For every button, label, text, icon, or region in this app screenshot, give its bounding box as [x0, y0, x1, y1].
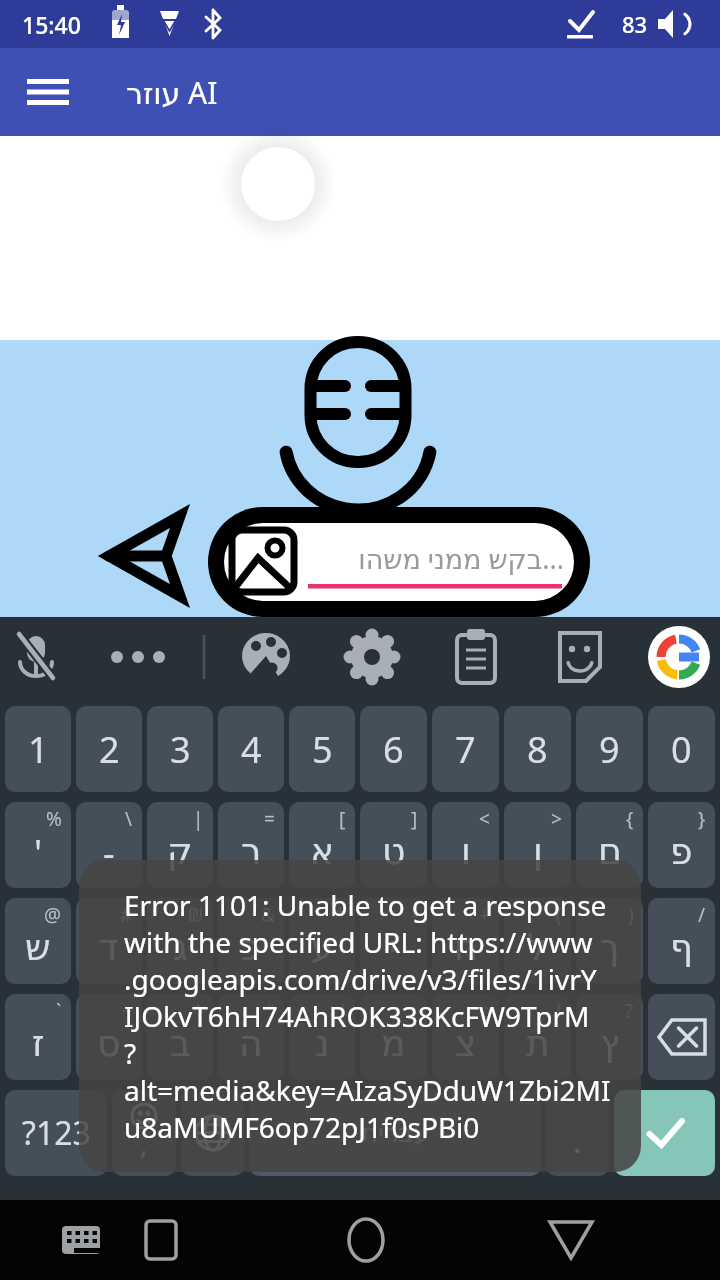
button[interactable]: ג	[147, 898, 213, 984]
button[interactable]: Change keyboard language	[181, 1090, 244, 1176]
button[interactable]: בקש ממני משהו...	[208, 507, 590, 617]
staticText: ₪	[188, 902, 204, 928]
button[interactable]: ?123	[5, 1090, 107, 1176]
button[interactable]: ל	[504, 898, 571, 984]
button[interactable]: ז	[5, 994, 71, 1080]
button[interactable]: Open navigation menu	[14, 58, 82, 126]
staticText: כ	[241, 927, 261, 969]
button[interactable]: ף	[648, 898, 715, 984]
staticText: "	[267, 998, 275, 1024]
button[interactable]: צ	[432, 994, 499, 1080]
button[interactable]: ם	[576, 802, 643, 888]
button[interactable]: Home	[337, 1211, 395, 1269]
staticText: &	[261, 902, 275, 928]
staticText: .	[573, 1119, 582, 1163]
button[interactable]: -	[76, 802, 142, 888]
staticText: ך	[600, 927, 620, 969]
staticText: עוזר AI	[126, 72, 218, 113]
button[interactable]: Emoji	[112, 1090, 176, 1176]
staticText: ה	[239, 1023, 263, 1065]
button[interactable]: ש	[5, 898, 71, 984]
button[interactable]: Voice input muted	[8, 631, 64, 687]
staticText: -	[411, 902, 418, 928]
staticText: נ	[315, 1023, 330, 1065]
button[interactable]: י	[360, 898, 427, 984]
staticText: ,	[140, 1124, 148, 1162]
staticText: ק	[167, 831, 193, 873]
staticText: ת	[526, 1023, 550, 1065]
staticText: ;	[484, 998, 490, 1024]
staticText: @	[44, 902, 62, 928]
button[interactable]: 8	[504, 706, 571, 792]
staticText: 6	[383, 725, 404, 774]
button[interactable]: ן	[504, 802, 571, 888]
staticText: ע	[311, 927, 334, 969]
button[interactable]: 6	[360, 706, 427, 792]
button[interactable]: Hide keyboard	[52, 1211, 110, 1269]
staticText: 2	[99, 725, 120, 774]
staticText: 83	[622, 9, 648, 39]
button[interactable]: ב	[147, 994, 213, 1080]
button[interactable]: 4	[218, 706, 284, 792]
staticText: Error 1101: Unable to get a response wit…	[124, 886, 615, 1146]
button[interactable]: א	[289, 802, 355, 888]
button[interactable]: נ	[289, 994, 355, 1080]
button[interactable]: ץ	[576, 994, 643, 1080]
button[interactable]: עברית	[249, 1090, 541, 1176]
staticText: [	[339, 806, 346, 832]
button[interactable]: Enter	[614, 1090, 715, 1176]
button[interactable]: Backspace	[648, 994, 715, 1080]
button[interactable]: כ	[218, 898, 284, 984]
staticText: ס	[97, 1023, 121, 1065]
button[interactable]: 7	[432, 706, 499, 792]
staticText: ף	[670, 927, 694, 969]
button[interactable]: פ	[648, 802, 715, 888]
staticText: :	[412, 998, 418, 1024]
staticText: /	[698, 902, 706, 928]
button[interactable]: 1	[5, 706, 71, 792]
button[interactable]: Recent apps	[132, 1211, 190, 1269]
button[interactable]: 9	[576, 706, 643, 792]
staticText: ג	[173, 927, 188, 969]
button[interactable]: 0	[648, 706, 715, 792]
button[interactable]: ע	[289, 898, 355, 984]
button[interactable]: ך	[576, 898, 643, 984]
staticText: ט	[382, 831, 406, 873]
button[interactable]: 2	[76, 706, 142, 792]
staticText: ל	[527, 927, 548, 969]
button[interactable]: '	[5, 802, 71, 888]
staticText: '	[34, 828, 43, 877]
staticText: 15:40	[22, 9, 81, 40]
staticText: ח	[454, 927, 478, 969]
staticText: \	[125, 806, 133, 832]
button[interactable]: מ	[360, 994, 427, 1080]
button[interactable]: More options	[90, 631, 146, 687]
button[interactable]: 5	[289, 706, 355, 792]
staticText: (	[556, 902, 562, 928]
button[interactable]: ט	[360, 802, 427, 888]
staticText: ר	[241, 831, 262, 873]
button[interactable]: Back	[542, 1211, 600, 1269]
button[interactable]: ר	[218, 802, 284, 888]
button[interactable]: ס	[76, 994, 142, 1080]
staticText: 9	[599, 725, 620, 774]
staticText: בקש ממני משהו...	[358, 540, 564, 577]
staticText: ~	[122, 998, 133, 1024]
staticText: ש	[25, 927, 51, 969]
staticText: {	[626, 806, 634, 832]
staticText: ץ	[600, 1023, 620, 1065]
staticText: }	[698, 806, 706, 832]
button[interactable]: ק	[147, 802, 213, 888]
button[interactable]: 3	[147, 706, 213, 792]
staticText: ז	[32, 1023, 45, 1065]
staticText: )	[628, 902, 634, 928]
button[interactable]: ד	[76, 898, 142, 984]
button[interactable]: .	[546, 1090, 609, 1176]
button[interactable]: ו	[432, 802, 499, 888]
staticText: +	[479, 902, 490, 928]
staticText: ם	[598, 831, 622, 873]
button[interactable]: ה	[218, 994, 284, 1080]
staticText: ן	[533, 831, 543, 873]
button[interactable]: ח	[432, 898, 499, 984]
button[interactable]: ת	[504, 994, 571, 1080]
